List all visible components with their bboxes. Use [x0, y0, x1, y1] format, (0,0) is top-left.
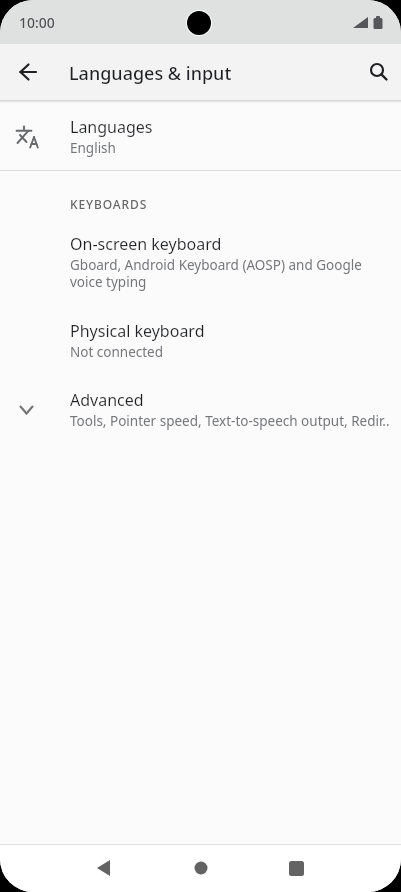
staticText: Languages [70, 116, 153, 138]
button[interactable] [272, 844, 320, 892]
button[interactable] [79, 844, 127, 892]
staticText: KEYBOARDS [70, 196, 148, 212]
staticText: Not connected [70, 343, 164, 361]
button[interactable]: Physical keyboard [0, 320, 401, 361]
staticText: English [70, 139, 116, 157]
staticText: Physical keyboard [70, 320, 205, 342]
button[interactable]: Advanced [0, 389, 401, 430]
staticText: 10:00 [19, 13, 55, 32]
staticText: Languages & input [69, 61, 232, 86]
button[interactable] [12, 56, 44, 88]
staticText: On-screen keyboard [70, 233, 222, 255]
button[interactable]: On-screen keyboard [0, 233, 401, 291]
staticText: Gboard, Android Keyboard (AOSP) and Goog… [70, 256, 362, 291]
button[interactable] [177, 844, 225, 892]
button[interactable]: Languages [0, 103, 401, 170]
staticText: Advanced [70, 389, 144, 411]
staticText: Tools, Pointer speed, Text-to-speech out… [70, 412, 390, 430]
button[interactable] [363, 56, 395, 88]
